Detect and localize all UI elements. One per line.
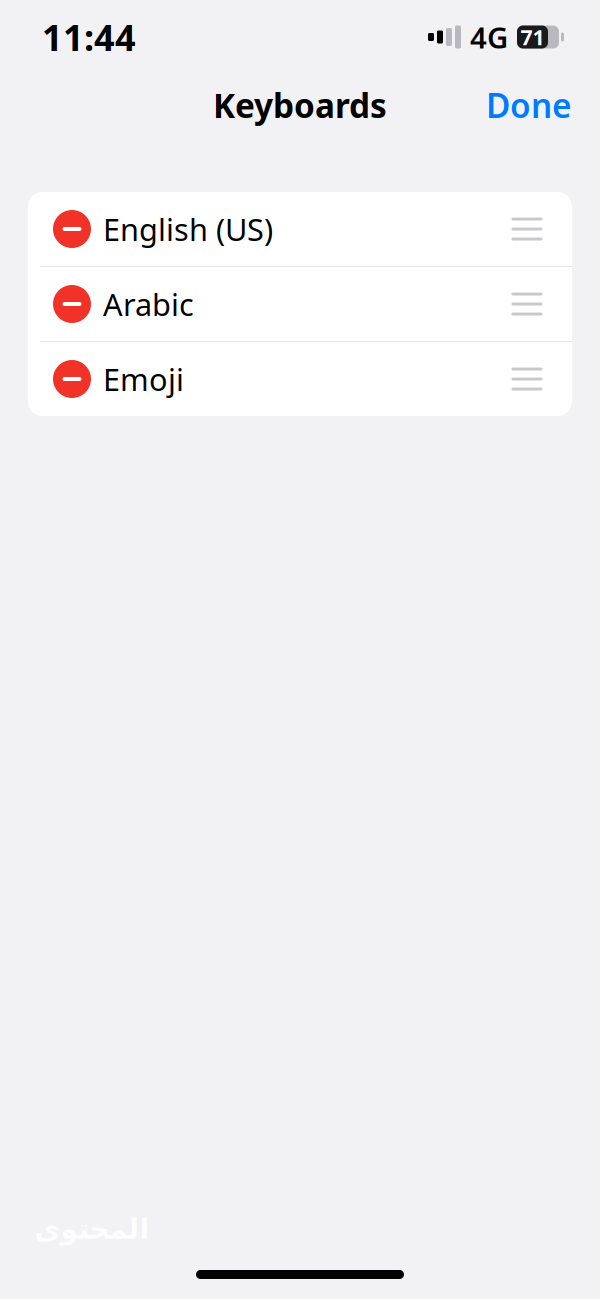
- button[interactable]: English (US): [28, 192, 572, 266]
- button[interactable]: Emoji: [28, 342, 572, 416]
- staticText: 4G: [470, 17, 508, 56]
- staticText: 11:44: [42, 13, 136, 61]
- staticText: Done: [486, 83, 572, 127]
- staticText: English (US): [103, 209, 273, 249]
- staticText: Arabic: [103, 284, 194, 324]
- button[interactable]: Done: [472, 75, 586, 135]
- staticText: Keyboards: [213, 83, 387, 127]
- button[interactable]: Arabic: [28, 267, 572, 341]
- button[interactable]: Remove Arabic: [50, 282, 94, 326]
- staticText: المحتوى: [34, 1213, 149, 1245]
- button[interactable]: Remove English (US): [50, 207, 94, 251]
- staticText: Emoji: [103, 359, 184, 399]
- button[interactable]: Remove Emoji: [50, 357, 94, 401]
- staticText: 71: [520, 23, 544, 51]
